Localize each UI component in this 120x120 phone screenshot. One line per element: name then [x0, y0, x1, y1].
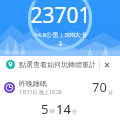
button[interactable]: 點選查看如何玩轉體重計 — [0, 56, 120, 73]
staticText: 70 — [92, 78, 107, 96]
staticText: 昨晚睡眠 — [19, 79, 47, 88]
staticText: 點選查看如何玩轉體重計 — [19, 60, 99, 69]
staticText: 23701 — [30, 1, 91, 30]
staticText: 分 — [72, 108, 77, 114]
staticText: 14.8公里 | 309大卡 — [34, 31, 87, 39]
button[interactable]: Close — [100, 58, 114, 72]
staticText: 5 — [41, 100, 49, 115]
button[interactable]: 昨晚睡眠 — [0, 73, 120, 120]
staticText: 1月31日 晚上10:28 — [19, 89, 62, 96]
staticText: 分 — [108, 89, 113, 95]
staticText: 14 — [56, 100, 71, 115]
button[interactable]: 23701 — [0, 0, 120, 56]
staticText: 時 — [50, 108, 55, 114]
